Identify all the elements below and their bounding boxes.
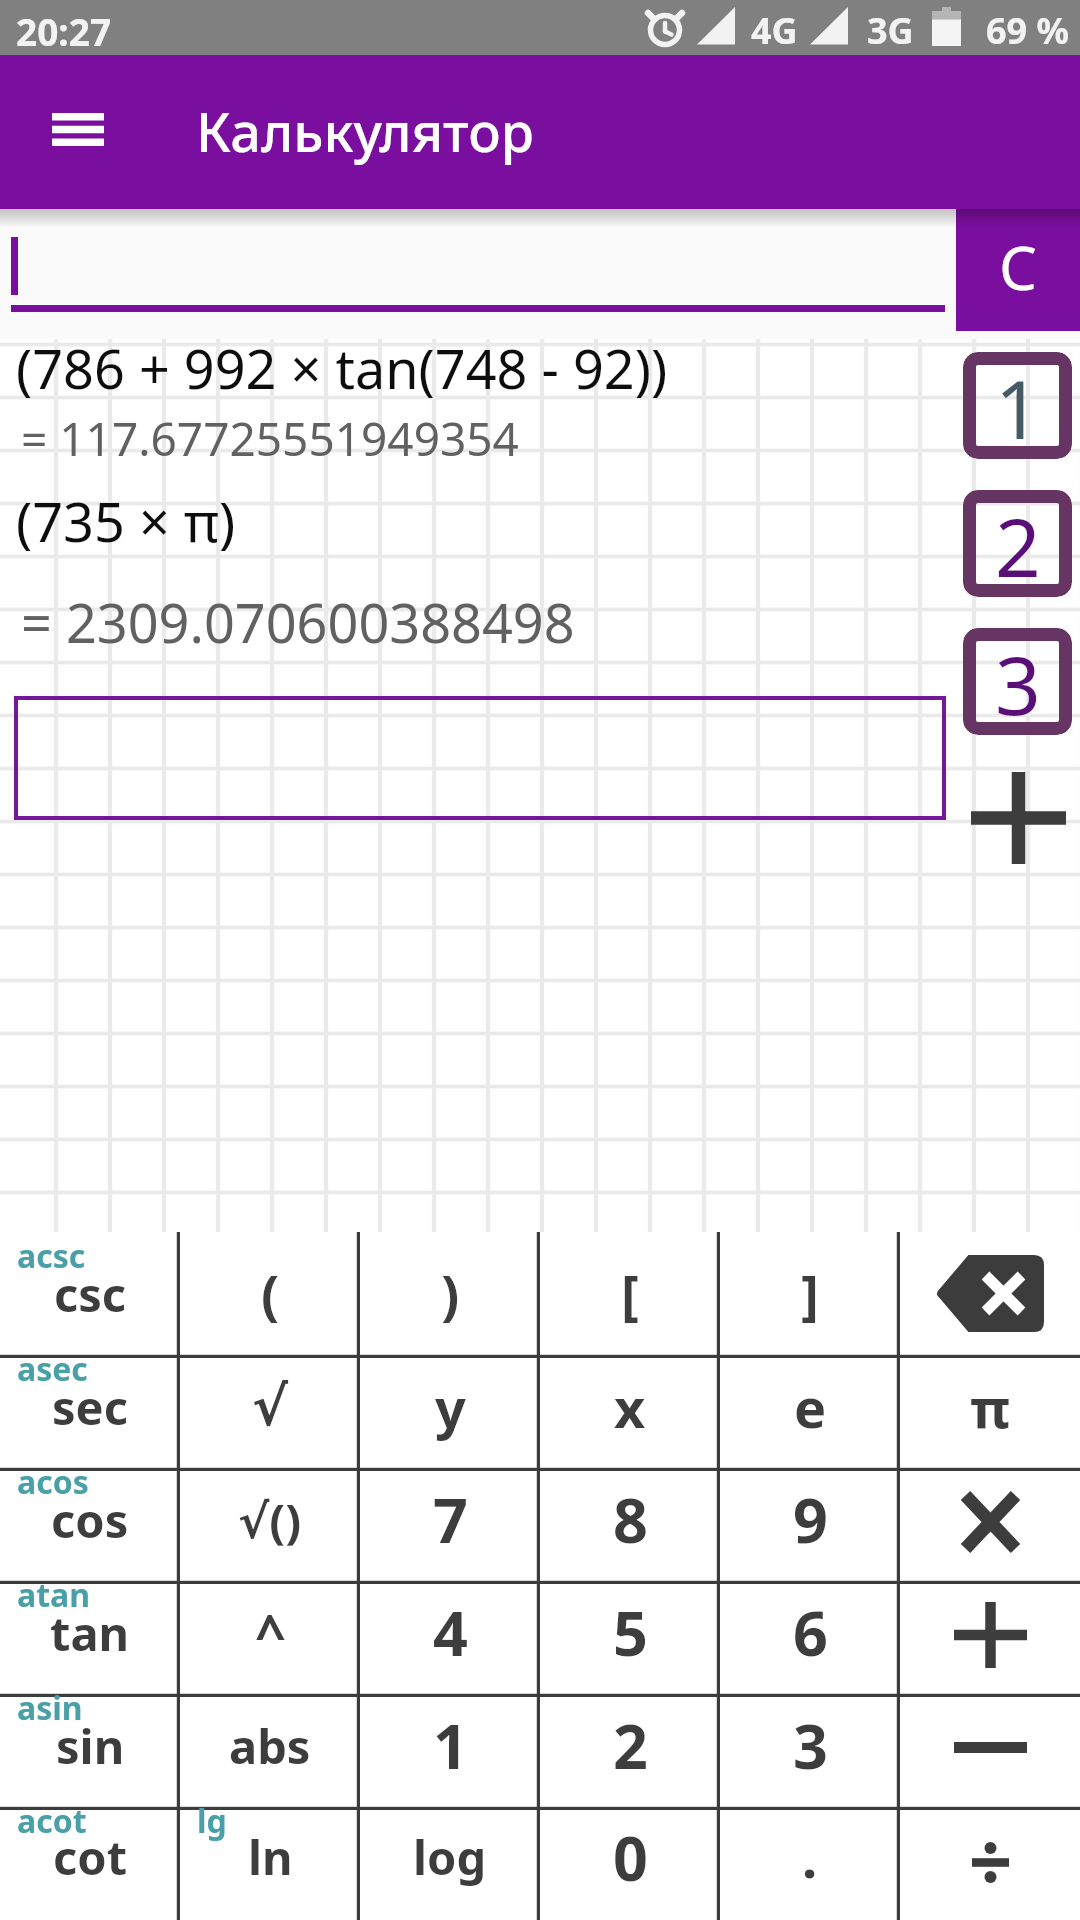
staticText: x [614,1370,646,1444]
staticText: (735 × π) [16,484,236,558]
button[interactable]: sin [0,1697,180,1810]
staticText: y [435,1370,466,1444]
button[interactable]: x [540,1358,720,1471]
staticText: sin [56,1714,125,1778]
staticText: 2 [613,1704,648,1787]
button[interactable]: π [900,1358,1080,1471]
staticText: atan [17,1573,91,1617]
button[interactable]: 1 [963,352,1072,459]
staticText: ln [248,1825,293,1889]
button[interactable]: . [720,1810,900,1920]
button[interactable]: 3 [963,628,1072,735]
staticText: lg [197,1799,227,1843]
staticText: 4 [433,1591,468,1674]
button[interactable]: 6 [720,1584,900,1697]
button[interactable]: 7 [360,1471,540,1584]
staticText: ] [801,1257,819,1331]
button[interactable]: abs [180,1697,360,1810]
button[interactable]: ] [720,1245,900,1358]
staticText: 6 [793,1591,828,1674]
staticText: acos [17,1460,89,1504]
button[interactable]: ^ [180,1584,360,1697]
staticText: 3 [793,1704,828,1787]
button[interactable]: Plus [900,1584,1080,1697]
staticText: cot [53,1825,128,1889]
staticText: √ [252,1375,289,1438]
button[interactable]: Divide [900,1810,1080,1920]
staticText: log [413,1825,487,1889]
staticText: √() [238,1488,302,1552]
button[interactable]: 9 [720,1471,900,1584]
button[interactable]: 4 [360,1584,540,1697]
staticText: tan [50,1601,130,1665]
staticText: sec [52,1375,128,1439]
staticText: 8 [613,1478,648,1561]
button[interactable]: Minus [900,1697,1080,1810]
button[interactable]: 5 [540,1584,720,1697]
button[interactable]: y [360,1358,540,1471]
button[interactable]: Multiply [900,1471,1080,1584]
button[interactable]: Add [962,761,1075,874]
staticText: e [794,1370,827,1444]
staticText: acot [17,1799,87,1843]
staticText: 20:27 [16,6,112,56]
button[interactable] [14,696,946,820]
staticText: 3G [867,6,914,55]
staticText: abs [229,1714,311,1778]
staticText: 1 [433,1704,468,1787]
staticText: π [970,1370,1011,1444]
staticText: 4G [751,6,798,55]
staticText: = 2309.070600388498 [21,585,575,659]
staticText: Калькулятор [196,94,535,168]
button[interactable]: √() [180,1471,360,1584]
button[interactable]: cot [0,1810,180,1920]
staticText: 5 [613,1591,648,1674]
button[interactable]: √ [180,1358,360,1471]
button[interactable]: log [360,1810,540,1920]
button[interactable]: e [720,1358,900,1471]
staticText: . [802,1820,818,1894]
staticText: (786 + 992 × tan(748 - 92)) [16,331,668,405]
staticText: asec [17,1347,88,1391]
button[interactable]: C [956,209,1080,331]
button[interactable]: csc [0,1245,180,1358]
staticText: 0 [613,1816,648,1899]
staticText: asin [17,1686,83,1730]
staticText: C [999,226,1037,308]
button[interactable]: sec [0,1358,180,1471]
staticText: acsc [17,1234,86,1278]
button[interactable]: ) [360,1245,540,1358]
staticText: 3 [995,629,1041,735]
staticText: 69 % [986,6,1070,55]
staticText: 9 [793,1478,828,1561]
staticText: [ [621,1257,639,1331]
staticText: ( [261,1257,280,1331]
button[interactable]: tan [0,1584,180,1697]
button[interactable]: Menu [28,79,128,179]
staticText: ) [441,1257,460,1331]
button[interactable]: 2 [963,490,1072,597]
staticText: 2 [995,491,1041,597]
staticText: ^ [255,1596,286,1670]
staticText: csc [54,1262,127,1326]
button[interactable]: ln [180,1810,360,1920]
button[interactable]: 2 [540,1697,720,1810]
staticText: 7 [433,1478,468,1561]
button[interactable]: 3 [720,1697,900,1810]
button[interactable]: 8 [540,1471,720,1584]
button[interactable]: 1 [360,1697,540,1810]
button[interactable]: ( [180,1245,360,1358]
button[interactable]: 0 [540,1810,720,1920]
staticText: 1 [995,353,1041,459]
staticText: = 117.67725551949354 [21,407,519,470]
button[interactable]: [ [540,1245,720,1358]
staticText: cos [51,1488,129,1552]
button[interactable]: cos [0,1471,180,1584]
button[interactable]: Delete [900,1245,1080,1358]
